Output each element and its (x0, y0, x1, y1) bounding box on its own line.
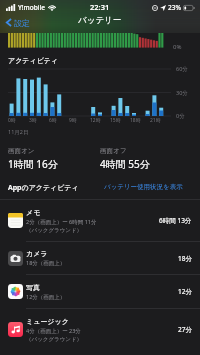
staticText: メモ (26, 208, 41, 217)
button[interactable]: カメラ (0, 242, 200, 274)
button[interactable]: バッテリー使用状況を表示 (104, 183, 183, 191)
staticText: バッテリー使用状況を表示 (104, 183, 183, 191)
staticText: アクティビティ (8, 56, 59, 65)
staticText: 18分 (178, 254, 192, 263)
staticText: 12分 (178, 287, 192, 296)
staticText: 21時 (150, 117, 161, 124)
staticText: 60分 (176, 65, 188, 73)
staticText: Y!mobile (18, 3, 45, 12)
staticText: 0% (173, 43, 182, 51)
staticText: 0時 (8, 117, 16, 124)
button[interactable]: ミュージック (0, 309, 200, 350)
staticText: 30分 (176, 89, 188, 97)
staticText: 23% (168, 3, 181, 12)
button[interactable]: 写真 (0, 275, 200, 308)
button[interactable]: メモ (0, 200, 200, 241)
staticText: 4分（画面上）ー 23分 (26, 327, 81, 335)
staticText: （バックグラウンド） (26, 336, 83, 343)
staticText: カメラ (26, 249, 48, 258)
staticText: 18時 (130, 117, 141, 124)
staticText: 9時 (69, 117, 77, 124)
staticText: 2分（画面上）ー 6時間 11分 (26, 218, 97, 226)
staticText: 6時間 13分 (159, 216, 192, 225)
staticText: 設定 (14, 18, 30, 28)
staticText: 1時間 16分 (8, 157, 58, 171)
staticText: 4時間 55分 (100, 157, 150, 171)
staticText: 画面オン (8, 147, 35, 155)
staticText: 12分（画面上） (26, 293, 66, 301)
staticText: 11月2日 (8, 128, 29, 136)
button[interactable]: 設定 (4, 15, 32, 30)
staticText: 27分 (178, 325, 192, 334)
staticText: 18分（画面上） (26, 259, 66, 267)
staticText: 写真 (26, 283, 40, 292)
staticText: Appのアクティビティ (8, 183, 79, 193)
staticText: 22:31 (90, 2, 110, 12)
staticText: バッテリー (78, 15, 122, 26)
staticText: 15時 (110, 117, 121, 124)
staticText: 12時 (90, 117, 101, 124)
staticText: 0分 (176, 112, 185, 120)
staticText: （バックグラウンド） (26, 227, 83, 234)
staticText: 6時 (49, 117, 57, 124)
staticText: 画面オフ (100, 147, 127, 155)
staticText: ミュージック (26, 317, 69, 326)
staticText: 3時 (29, 117, 37, 124)
